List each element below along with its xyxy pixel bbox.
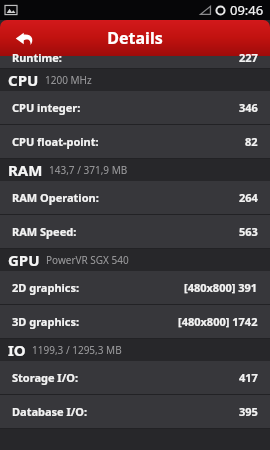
staticText: Database I/O: [12,404,88,419]
staticText: CPU float-point: [12,134,99,149]
staticText: 1200 MHz [45,73,92,87]
staticText: 2D graphics: [12,280,80,295]
staticText: Storage I/O: [12,370,79,385]
staticText: 09:46 [230,1,264,19]
staticText: 3D graphics: [12,314,80,329]
staticText: RAM [8,160,43,180]
staticText: 227 [239,50,258,62]
staticText: RAM Speed: [12,224,77,239]
staticText: 417 [239,370,258,385]
button[interactable]: CPU float-point: [0,125,270,158]
staticText: Details [107,27,163,49]
staticText: 346 [239,100,258,115]
button[interactable]: CPU integer: [0,91,270,124]
staticText: IO [8,340,26,360]
staticText: 563 [239,224,258,239]
staticText: 143,7 / 371,9 MB [49,163,128,177]
staticText: CPU [8,70,39,90]
staticText: [480x800] 391 [184,280,258,295]
button[interactable]: Runtime: [0,56,270,68]
button[interactable]: 2D graphics: [0,271,270,304]
staticText: RAM Operation: [12,190,99,205]
staticText: 82 [245,134,258,149]
staticText: PowerVR SGX 540 [46,253,129,267]
staticText: [480x800] 1742 [178,314,258,329]
staticText: 1199,3 / 1295,3 MB [32,343,122,357]
staticText: 264 [239,190,258,205]
button[interactable]: 3D graphics: [0,305,270,338]
staticText: 395 [239,404,258,419]
button[interactable]: Database I/O: [0,395,270,428]
button[interactable]: Back [8,22,40,54]
button[interactable]: RAM Speed: [0,215,270,248]
button[interactable]: RAM Operation: [0,181,270,214]
button[interactable]: Storage I/O: [0,361,270,394]
staticText: Runtime: [12,50,62,62]
staticText: CPU integer: [12,100,81,115]
staticText: GPU [8,250,40,270]
